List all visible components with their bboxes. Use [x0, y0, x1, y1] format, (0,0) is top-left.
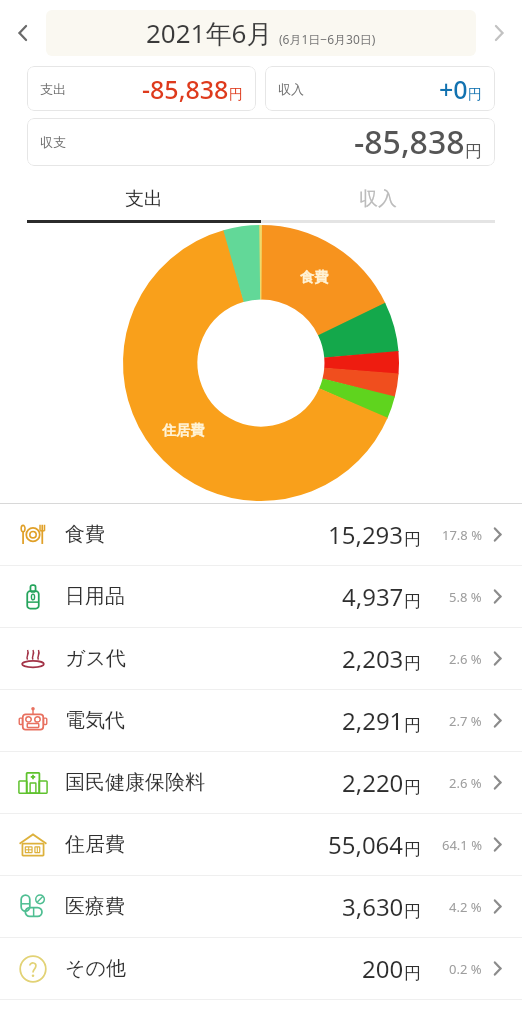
staticText: (6月1日−6月30日) — [279, 31, 376, 47]
staticText: 55,064 — [328, 828, 404, 861]
staticText: 収入 — [278, 81, 304, 97]
staticText: 円 — [404, 529, 421, 550]
button[interactable]: 支出 — [27, 182, 261, 216]
staticText: 医療費 — [65, 894, 125, 919]
staticText: ガス代 — [65, 646, 126, 671]
button[interactable]: その他 — [0, 938, 522, 999]
button[interactable]: 2021年6月 — [46, 10, 476, 56]
staticText: 0.2 % — [449, 960, 482, 978]
staticText: 2,220 — [342, 766, 404, 799]
staticText: 4.2 % — [449, 898, 482, 916]
button[interactable]: 食費 — [0, 504, 522, 565]
staticText: 住居費 — [162, 422, 204, 440]
staticText: 円 — [465, 141, 482, 162]
button[interactable]: Next month — [476, 10, 522, 56]
staticText: 日用品 — [65, 584, 125, 609]
button[interactable]: 収入 — [265, 66, 495, 111]
button[interactable]: 支出 — [27, 66, 256, 111]
staticText: 17.8 % — [442, 526, 482, 544]
staticText: 食費 — [65, 522, 105, 547]
staticText: 2.6 % — [449, 650, 482, 668]
staticText: 円 — [468, 86, 482, 104]
staticText: 電気代 — [65, 708, 125, 733]
staticText: 住居費 — [65, 832, 125, 857]
staticText: 円 — [229, 86, 243, 104]
staticText: -85,838 — [354, 120, 465, 164]
staticText: 支出 — [125, 187, 163, 211]
button[interactable]: 収入 — [261, 182, 495, 216]
button[interactable]: 日用品 — [0, 566, 522, 627]
staticText: 2,203 — [342, 642, 404, 675]
staticText: 国民健康保険料 — [65, 770, 205, 795]
staticText: 円 — [404, 901, 421, 922]
staticText: -85,838 — [142, 72, 229, 106]
staticText: 2.7 % — [449, 712, 482, 730]
staticText: 円 — [404, 591, 421, 612]
staticText: 5.8 % — [449, 588, 482, 606]
button[interactable]: 電気代 — [0, 690, 522, 751]
staticText: 円 — [404, 653, 421, 674]
staticText: +0 — [439, 72, 468, 106]
staticText: 収支 — [40, 134, 66, 150]
staticText: 円 — [404, 777, 421, 798]
staticText: その他 — [65, 956, 126, 981]
staticText: 2021年6月 — [146, 15, 273, 51]
staticText: 4,937 — [342, 580, 404, 613]
staticText: 2.6 % — [449, 774, 482, 792]
staticText: 3,630 — [342, 890, 404, 923]
button[interactable]: 医療費 — [0, 876, 522, 937]
staticText: 64.1 % — [442, 836, 482, 854]
staticText: 200 — [362, 952, 404, 985]
staticText: 2,291 — [342, 704, 404, 737]
button[interactable]: 住居費 — [0, 814, 522, 875]
staticText: 支出 — [40, 81, 66, 97]
staticText: 15,293 — [328, 518, 404, 551]
staticText: 収入 — [359, 187, 397, 211]
button[interactable]: ガス代 — [0, 628, 522, 689]
button[interactable]: 国民健康保険料 — [0, 752, 522, 813]
staticText: 食費 — [300, 269, 328, 287]
staticText: 円 — [404, 963, 421, 984]
button[interactable]: Previous month — [0, 10, 46, 56]
staticText: 円 — [404, 839, 421, 860]
button[interactable]: 収支 — [27, 118, 495, 166]
staticText: 円 — [404, 715, 421, 736]
